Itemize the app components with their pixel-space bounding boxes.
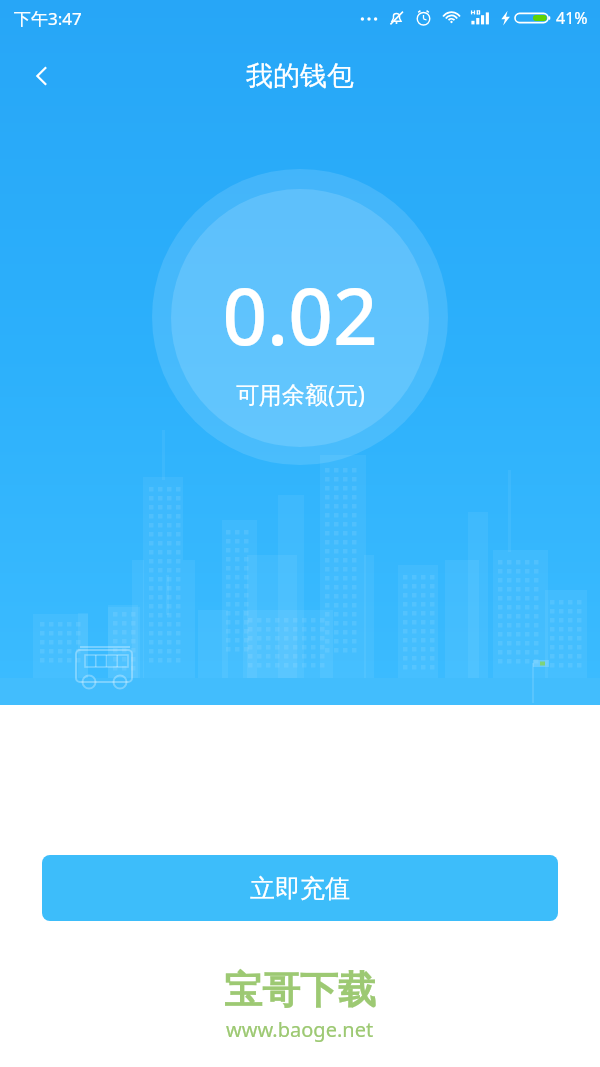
button[interactable]: Back <box>14 48 70 104</box>
staticText: 我的钱包 <box>246 59 354 93</box>
staticText: www.baoge.net <box>226 1016 374 1043</box>
staticText: 41% <box>556 7 588 29</box>
staticText: 下午3:47 <box>14 7 82 30</box>
button[interactable]: 立即充值 <box>42 855 558 921</box>
staticText: 0.02 <box>222 262 378 368</box>
staticText: 宝哥下载 <box>224 966 376 1014</box>
staticText: 可用余额(元) <box>236 378 365 409</box>
staticText: 立即充值 <box>250 873 350 904</box>
